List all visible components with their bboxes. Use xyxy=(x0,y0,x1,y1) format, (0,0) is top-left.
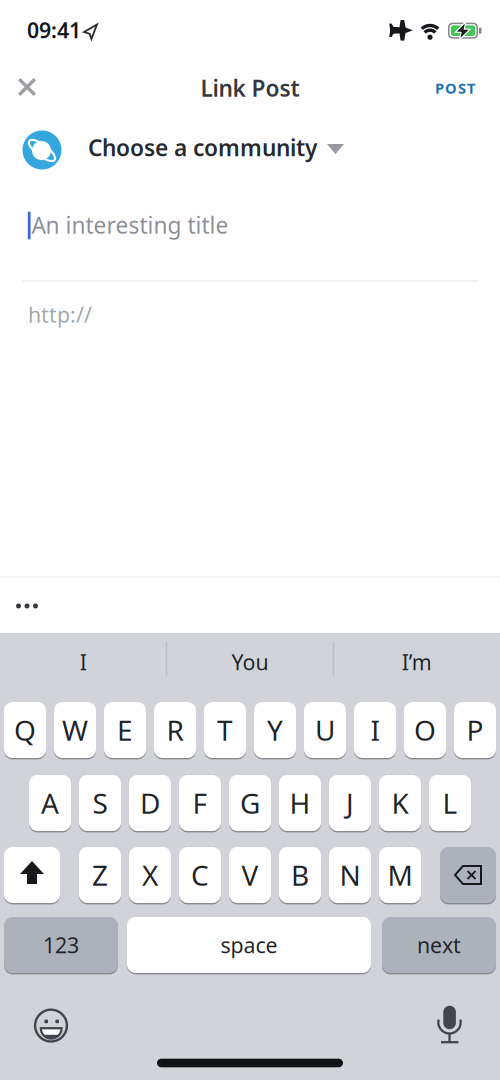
staticText: POST xyxy=(435,78,475,98)
button[interactable]: I xyxy=(354,701,396,759)
button[interactable]: R xyxy=(154,701,196,759)
button[interactable]: U xyxy=(304,701,346,759)
button[interactable]: Close xyxy=(5,65,49,109)
staticText: W xyxy=(62,711,88,749)
button[interactable]: C xyxy=(179,846,221,904)
staticText: Choose a community xyxy=(88,132,317,162)
button[interactable]: http:// xyxy=(0,281,500,347)
staticText: M xyxy=(387,856,412,894)
button[interactable]: Y xyxy=(254,701,296,759)
button[interactable]: G xyxy=(229,774,271,832)
staticText: G xyxy=(240,784,260,822)
button[interactable]: Q xyxy=(4,701,46,759)
button[interactable]: M xyxy=(379,846,421,904)
button[interactable]: D xyxy=(129,774,171,832)
button[interactable]: J xyxy=(329,774,371,832)
staticText: Link Post xyxy=(200,73,299,103)
button[interactable]: POST xyxy=(423,66,487,110)
staticText: H xyxy=(289,784,310,822)
button[interactable]: X xyxy=(129,846,171,904)
button[interactable]: I’m xyxy=(337,636,497,688)
button[interactable]: More options xyxy=(0,584,60,628)
staticText: 09:41 xyxy=(27,16,81,44)
staticText: D xyxy=(140,784,160,822)
button[interactable]: next xyxy=(382,916,496,974)
staticText: N xyxy=(339,856,360,894)
staticText: C xyxy=(191,856,209,894)
button[interactable]: 123 xyxy=(4,916,118,974)
button[interactable]: Emoji xyxy=(23,998,79,1054)
button[interactable]: An interesting title xyxy=(0,182,500,270)
staticText: T xyxy=(217,711,233,749)
button[interactable]: F xyxy=(179,774,221,832)
button[interactable]: space xyxy=(127,916,371,974)
button[interactable]: Shift xyxy=(4,846,60,904)
staticText: You xyxy=(231,648,268,676)
button[interactable]: V xyxy=(229,846,271,904)
button[interactable]: Choose a community xyxy=(0,120,360,180)
staticText: V xyxy=(241,856,258,894)
staticText: L xyxy=(442,784,457,822)
staticText: F xyxy=(192,784,207,822)
button[interactable]: P xyxy=(454,701,496,759)
button[interactable]: L xyxy=(429,774,471,832)
button[interactable]: Delete xyxy=(440,846,496,904)
staticText: Z xyxy=(92,856,108,894)
button[interactable]: O xyxy=(404,701,446,759)
staticText: S xyxy=(92,784,107,822)
staticText: P xyxy=(466,711,483,749)
staticText: K xyxy=(391,784,408,822)
staticText: A xyxy=(41,784,59,822)
staticText: http:// xyxy=(28,300,92,329)
button[interactable]: S xyxy=(79,774,121,832)
button[interactable]: B xyxy=(279,846,321,904)
staticText: next xyxy=(417,931,461,959)
button[interactable]: I xyxy=(3,636,163,688)
button[interactable]: Z xyxy=(79,846,121,904)
button[interactable]: H xyxy=(279,774,321,832)
button[interactable]: A xyxy=(29,774,71,832)
button[interactable]: T xyxy=(204,701,246,759)
button[interactable]: N xyxy=(329,846,371,904)
button[interactable]: You xyxy=(170,636,330,688)
staticText: I xyxy=(370,711,379,749)
staticText: O xyxy=(414,711,436,749)
button[interactable]: E xyxy=(104,701,146,759)
staticText: X xyxy=(142,856,158,894)
staticText: Q xyxy=(14,711,36,749)
staticText: J xyxy=(346,784,354,822)
staticText: space xyxy=(220,931,277,959)
staticText: An interesting title xyxy=(31,210,228,240)
staticText: R xyxy=(166,711,183,749)
staticText: E xyxy=(117,711,133,749)
staticText: 123 xyxy=(43,931,79,959)
staticText: I’m xyxy=(402,648,432,676)
staticText: U xyxy=(315,711,335,749)
staticText: B xyxy=(291,856,309,894)
staticText: I xyxy=(80,648,87,676)
button[interactable]: W xyxy=(54,701,96,759)
staticText: Y xyxy=(267,711,283,749)
button[interactable]: Dictate xyxy=(421,996,477,1052)
button[interactable]: K xyxy=(379,774,421,832)
